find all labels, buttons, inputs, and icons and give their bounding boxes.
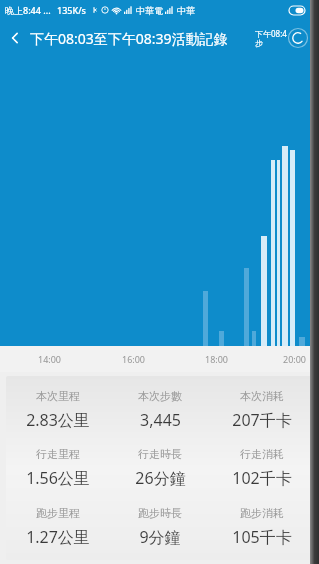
staticText: 本次消耗	[240, 389, 284, 403]
staticText: 207千卡	[232, 409, 292, 431]
staticText: 下午08:4 步	[255, 28, 287, 48]
staticText: 本次步數	[138, 389, 182, 403]
staticText: 20:00	[283, 353, 307, 365]
staticText: 9分鐘	[139, 526, 181, 548]
staticText: 本次里程	[36, 389, 80, 403]
staticText: 26分鐘	[135, 467, 186, 489]
button[interactable]: 本次步數	[109, 385, 211, 435]
staticText: 14:00	[38, 353, 62, 365]
staticText: 中華	[177, 5, 195, 16]
button[interactable]: 行走時長	[109, 443, 211, 493]
staticText: 行走里程	[36, 447, 80, 461]
staticText: 跑步時長	[138, 506, 182, 520]
staticText: 下午08:03至下午08:39活動記錄	[30, 29, 228, 48]
staticText: 2.83公里	[26, 409, 90, 431]
staticText: 跑步消耗	[240, 506, 284, 520]
button[interactable]: 跑步消耗	[211, 502, 313, 552]
button[interactable]: 跑步里程	[6, 502, 109, 552]
button[interactable]: 本次里程	[6, 385, 109, 435]
staticText: 1.56公里	[26, 467, 90, 489]
staticText: 中華電	[136, 5, 163, 16]
staticText: 135K/s	[57, 4, 86, 16]
button[interactable]: 行走里程	[6, 443, 109, 493]
staticText: 行走時長	[138, 447, 182, 461]
staticText: 行走消耗	[240, 447, 284, 461]
button[interactable]: 本次消耗	[211, 385, 313, 435]
staticText: 1.27公里	[26, 526, 90, 548]
button[interactable]: 同步	[255, 27, 309, 49]
button[interactable]: 行走消耗	[211, 443, 313, 493]
staticText: 102千卡	[232, 467, 292, 489]
staticText: 跑步里程	[36, 506, 80, 520]
staticText: 3,445	[140, 409, 181, 431]
staticText: 晚上8:44 ...	[5, 4, 51, 16]
button[interactable]: 返回	[0, 23, 30, 53]
staticText: 18:00	[205, 353, 229, 365]
staticText: 16:00	[122, 353, 146, 365]
staticText: 105千卡	[232, 526, 292, 548]
button[interactable]: 跑步時長	[109, 502, 211, 552]
